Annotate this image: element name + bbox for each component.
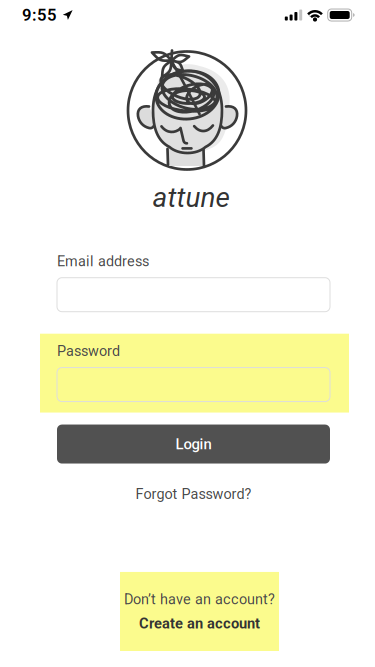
staticText: Email address (57, 253, 149, 270)
staticText: Password (57, 343, 120, 360)
staticText: Forgot Password? (135, 486, 251, 502)
staticText: Login (175, 435, 211, 453)
staticText: Don’t have an account? (124, 591, 275, 608)
button[interactable]: Forgot Password? (57, 464, 330, 513)
staticText: attune (152, 181, 229, 214)
staticText: Create an account (139, 615, 260, 632)
button[interactable]: Don’t have an account? (120, 572, 279, 651)
button[interactable]: Login (57, 425, 330, 464)
staticText: 9:55 (22, 5, 57, 25)
